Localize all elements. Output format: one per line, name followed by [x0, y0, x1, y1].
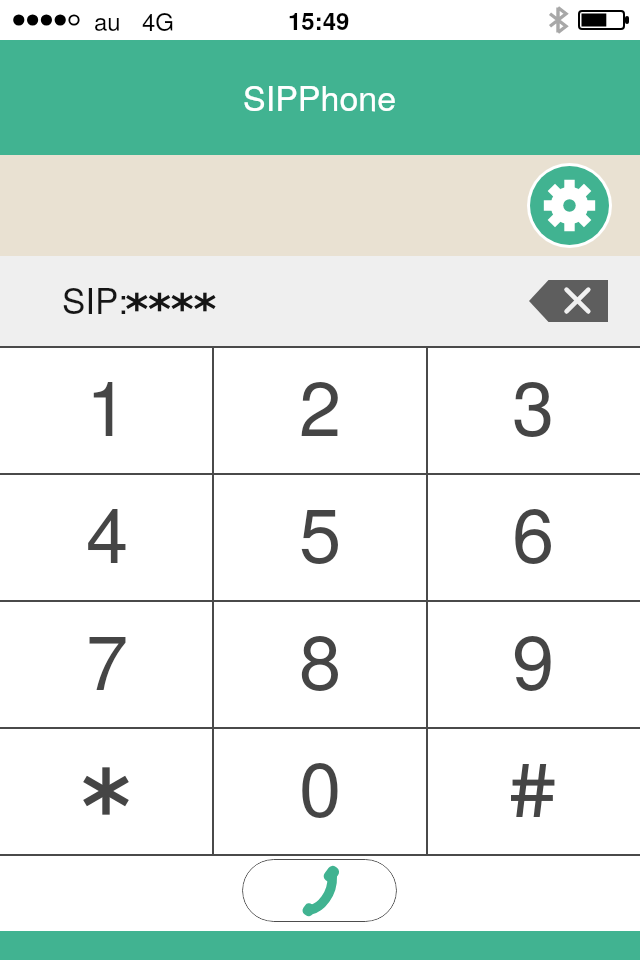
staticText: SIPPhone [243, 72, 397, 121]
button[interactable]: 1 [0, 348, 214, 473]
staticText: 1 [86, 349, 129, 458]
button[interactable]: Call [242, 859, 397, 922]
staticText: 3 [512, 349, 555, 458]
button[interactable]: 7 [0, 602, 214, 727]
staticText: 6 [512, 476, 555, 585]
staticText: SIP: [62, 274, 129, 324]
button[interactable]: 4 [0, 475, 214, 600]
button[interactable]: Delete [529, 280, 608, 322]
staticText: 15:49 [288, 3, 350, 37]
button[interactable]: 6 [427, 475, 640, 600]
staticText: 0 [299, 730, 342, 839]
button[interactable] [0, 729, 214, 854]
staticText: 5 [299, 476, 342, 585]
staticText: au [94, 3, 121, 37]
button[interactable] [427, 729, 640, 854]
staticText: 4G [142, 3, 175, 37]
button[interactable]: 3 [427, 348, 640, 473]
button[interactable]: 0 [214, 729, 427, 854]
button[interactable]: 2 [214, 348, 427, 473]
staticText: 2 [299, 349, 342, 458]
staticText: 7 [86, 603, 129, 712]
button[interactable]: 8 [214, 602, 427, 727]
button[interactable]: 5 [214, 475, 427, 600]
staticText: 4 [86, 476, 129, 585]
button[interactable]: Settings [530, 166, 609, 245]
staticText: 8 [299, 603, 342, 712]
staticText: 9 [512, 603, 555, 712]
button[interactable]: 9 [427, 602, 640, 727]
